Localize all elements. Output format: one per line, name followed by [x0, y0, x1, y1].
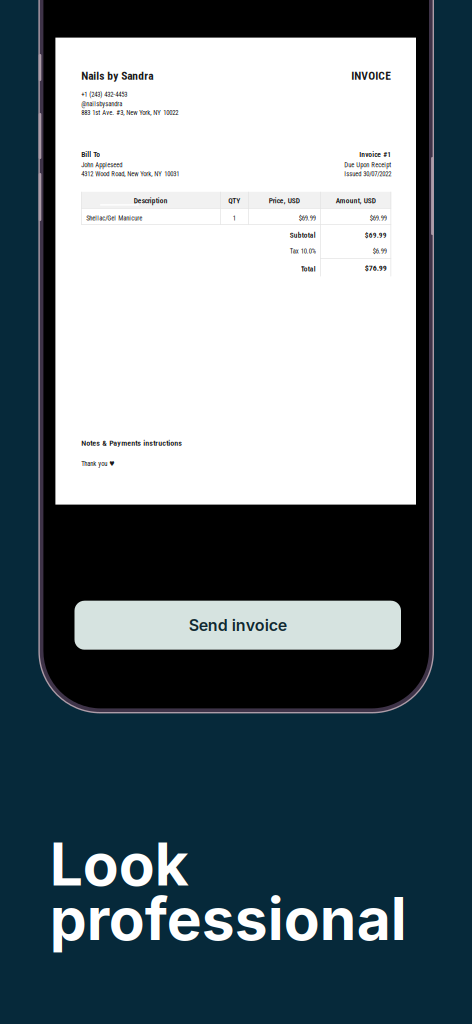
staticText: Invoice #1 — [359, 150, 391, 159]
staticText: Issued 30/07/2022 — [344, 170, 391, 178]
staticText: 883 1st Ave. #3, New York, NY 10022 — [81, 109, 178, 116]
staticText: Thank you ♥ — [81, 460, 114, 467]
staticText: $6.99 — [373, 247, 387, 255]
staticText: INVOICE — [351, 69, 391, 82]
staticText: Shellac/Gel Manicure — [86, 214, 142, 222]
button[interactable]: Send invoice — [74, 601, 401, 650]
staticText: Tax 10.0% — [290, 247, 316, 255]
staticText: Bill To — [81, 150, 100, 159]
staticText: @nailsbysandra — [81, 100, 122, 108]
staticText: 1 — [233, 214, 236, 222]
staticText: Description — [134, 196, 168, 205]
staticText: Look — [50, 829, 189, 900]
staticText: professional — [50, 883, 407, 954]
staticText: +1 (243) 432-4453 — [81, 90, 127, 98]
staticText: $69.99 — [299, 214, 316, 222]
staticText: Nails by Sandra — [81, 69, 153, 82]
staticText: $76.99 — [365, 263, 387, 273]
staticText: Price, USD — [269, 196, 300, 205]
staticText: Amount, USD — [336, 196, 376, 205]
staticText: Send invoice — [189, 615, 287, 635]
staticText: Subtotal — [290, 231, 316, 239]
staticText: QTY — [228, 196, 240, 205]
staticText: John Appleseed — [81, 161, 122, 169]
staticText: Total — [301, 265, 316, 273]
staticText: $69.99 — [370, 214, 387, 222]
staticText: 4312 Wood Road, New York, NY 10031 — [81, 170, 179, 178]
staticText: $69.99 — [365, 231, 387, 239]
staticText: Notes & Payments instructions — [81, 438, 182, 448]
staticText: Due Upon Receipt — [344, 161, 391, 169]
